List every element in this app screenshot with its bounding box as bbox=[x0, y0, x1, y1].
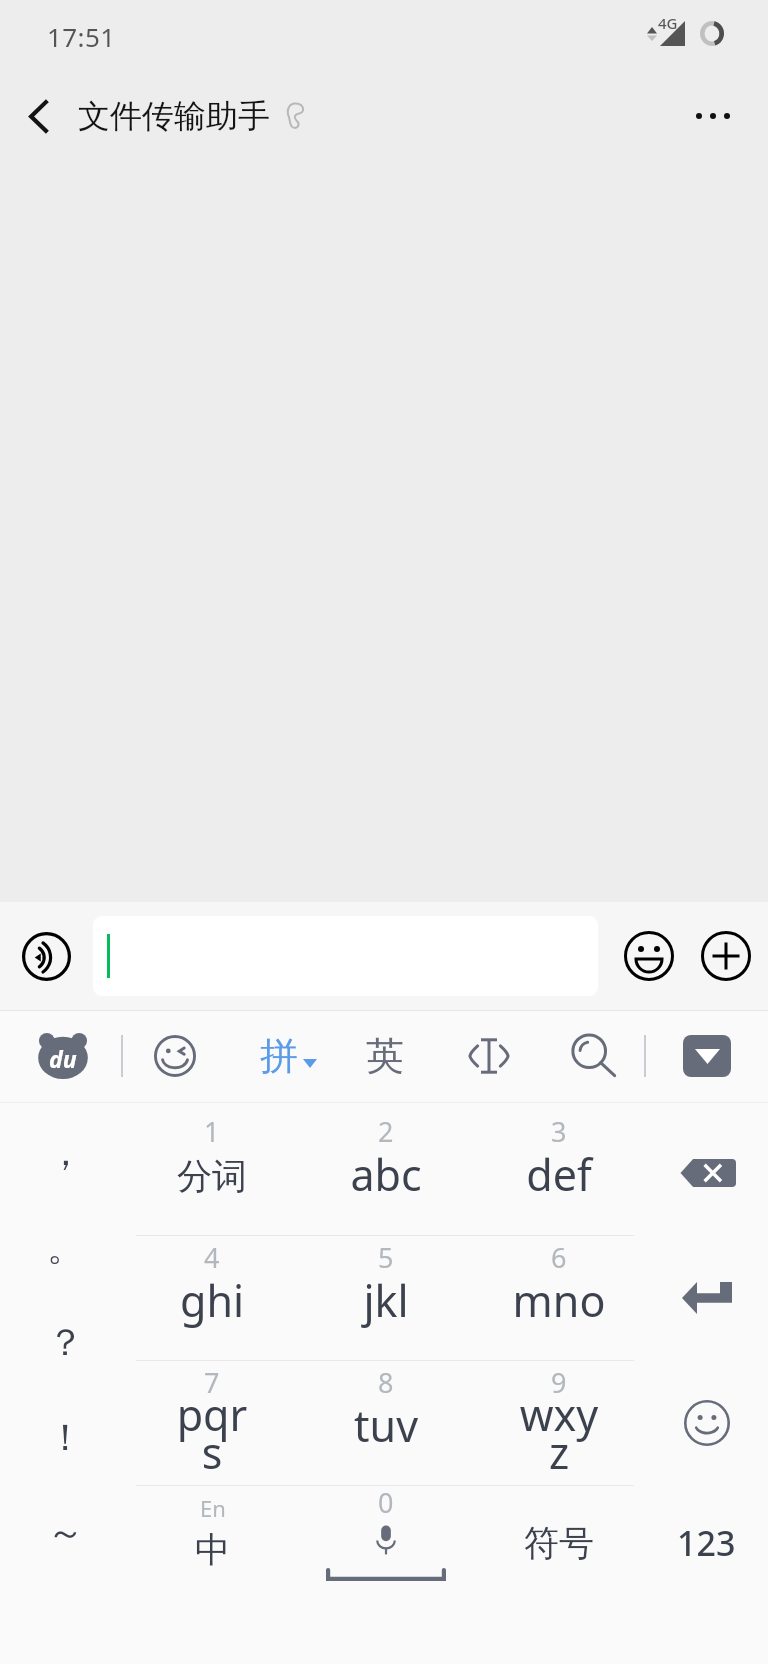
staticText: 4G bbox=[658, 13, 678, 33]
staticText: 9 bbox=[551, 1364, 567, 1401]
button[interactable]: En bbox=[125, 1486, 299, 1610]
button[interactable]: 6 bbox=[472, 1236, 645, 1360]
staticText: 0 bbox=[378, 1484, 394, 1521]
button[interactable]: 123 bbox=[645, 1485, 768, 1610]
button[interactable]: 9 bbox=[472, 1361, 645, 1485]
button[interactable]: 7 bbox=[125, 1361, 299, 1485]
button[interactable]: ～ bbox=[0, 1485, 125, 1580]
staticText: 文件传输助手 bbox=[78, 96, 270, 136]
button[interactable]: Hide keyboard bbox=[672, 1021, 742, 1091]
button[interactable]: ！ bbox=[0, 1390, 125, 1485]
staticText: 17:51 bbox=[47, 19, 116, 54]
button[interactable]: 拼 bbox=[252, 1022, 325, 1090]
staticText: ？ bbox=[47, 1319, 84, 1366]
button[interactable]: 3 bbox=[472, 1110, 645, 1235]
staticText: 中 bbox=[195, 1528, 230, 1572]
staticText: tuv bbox=[321, 1396, 451, 1455]
staticText: ！ bbox=[47, 1414, 84, 1461]
staticText: 123 bbox=[677, 1520, 736, 1566]
button[interactable] bbox=[93, 916, 598, 996]
staticText: 。 bbox=[47, 1224, 84, 1271]
button[interactable]: Move cursor bbox=[454, 1021, 524, 1091]
button[interactable]: 2 bbox=[299, 1110, 472, 1235]
staticText: ghi bbox=[147, 1271, 277, 1330]
staticText: 分词 bbox=[147, 1154, 277, 1198]
staticText: 4 bbox=[204, 1239, 220, 1276]
button[interactable]: More options bbox=[658, 72, 768, 160]
staticText: def bbox=[494, 1145, 624, 1204]
staticText: mno bbox=[494, 1271, 624, 1330]
staticText: 3 bbox=[551, 1113, 567, 1150]
button[interactable]: Emoji bbox=[645, 1360, 768, 1485]
button[interactable]: Back bbox=[0, 72, 76, 160]
staticText: wxy z bbox=[494, 1385, 624, 1481]
button[interactable]: Baidu input settings bbox=[28, 1021, 98, 1091]
button[interactable]: ， bbox=[0, 1105, 125, 1200]
button[interactable]: Stickers bbox=[140, 1021, 210, 1091]
staticText: du bbox=[49, 1043, 77, 1074]
button[interactable]: 1 bbox=[125, 1110, 299, 1235]
staticText: 拼 bbox=[260, 1032, 298, 1080]
button[interactable]: Search bbox=[559, 1021, 629, 1091]
button[interactable]: 英 bbox=[352, 1022, 418, 1090]
staticText: ， bbox=[47, 1129, 84, 1176]
staticText: 5 bbox=[378, 1239, 394, 1276]
button[interactable]: 8 bbox=[299, 1361, 472, 1485]
staticText: 符号 bbox=[524, 1521, 594, 1565]
button[interactable]: 4 bbox=[125, 1236, 299, 1360]
staticText: 6 bbox=[551, 1239, 567, 1276]
button[interactable]: 符号 bbox=[472, 1486, 645, 1610]
button[interactable]: Enter bbox=[645, 1235, 768, 1360]
staticText: 1 bbox=[204, 1113, 220, 1150]
staticText: pqr s bbox=[147, 1385, 277, 1481]
button[interactable]: Voice input bbox=[14, 924, 78, 988]
staticText: 8 bbox=[378, 1364, 394, 1401]
button[interactable]: Backspace bbox=[645, 1110, 768, 1235]
button[interactable]: 5 bbox=[299, 1236, 472, 1360]
button[interactable]: More bbox=[694, 924, 758, 988]
staticText: En bbox=[200, 1493, 226, 1523]
button[interactable]: 。 bbox=[0, 1200, 125, 1295]
staticText: 2 bbox=[378, 1113, 394, 1150]
button[interactable]: Space bbox=[299, 1486, 472, 1610]
staticText: jkl bbox=[321, 1271, 451, 1330]
staticText: abc bbox=[321, 1145, 451, 1204]
staticText: 7 bbox=[204, 1364, 220, 1401]
button[interactable]: Emoji bbox=[617, 924, 681, 988]
button[interactable]: ？ bbox=[0, 1295, 125, 1390]
staticText: ～ bbox=[47, 1509, 84, 1556]
